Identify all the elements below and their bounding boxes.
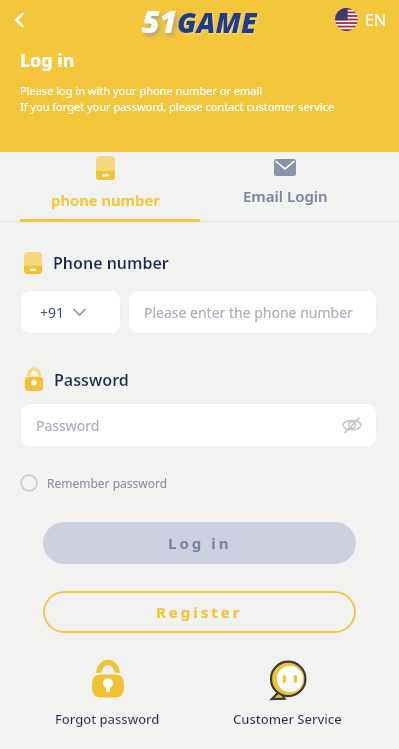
- staticText: GAME: [177, 3, 257, 41]
- button[interactable]: Customer Service: [197, 660, 377, 728]
- staticText: If you forget your password, please cont…: [20, 99, 335, 114]
- button[interactable]: phone number: [16, 152, 195, 222]
- staticText: Register: [156, 602, 243, 622]
- staticText: Password: [54, 369, 129, 391]
- staticText: Please log in with your phone number or …: [20, 83, 263, 98]
- button[interactable]: Log in: [43, 522, 356, 564]
- staticText: Email Login: [243, 186, 328, 206]
- staticText: Remember password: [47, 475, 168, 491]
- staticText: EN: [365, 9, 387, 31]
- button[interactable]: EN: [335, 8, 387, 31]
- staticText: +91: [40, 303, 65, 322]
- staticText: Customer Service: [233, 710, 342, 728]
- staticText: phone number: [51, 190, 160, 210]
- button[interactable]: [0, 0, 40, 40]
- button[interactable]: Email Login: [195, 152, 375, 222]
- staticText: Forgot password: [55, 710, 160, 728]
- staticText: Password: [36, 416, 100, 435]
- button[interactable]: Password: [20, 403, 377, 447]
- button[interactable]: Forgot password: [18, 660, 197, 728]
- button[interactable]: Please enter the phone number: [128, 290, 377, 334]
- button[interactable]: +91: [20, 290, 121, 334]
- staticText: Log in: [20, 48, 75, 73]
- button[interactable]: Remember password: [20, 474, 168, 492]
- staticText: Phone number: [53, 252, 169, 274]
- staticText: Log in: [168, 533, 232, 553]
- staticText: 51: [142, 1, 177, 42]
- button[interactable]: Register: [43, 591, 356, 633]
- staticText: Please enter the phone number: [144, 303, 353, 322]
